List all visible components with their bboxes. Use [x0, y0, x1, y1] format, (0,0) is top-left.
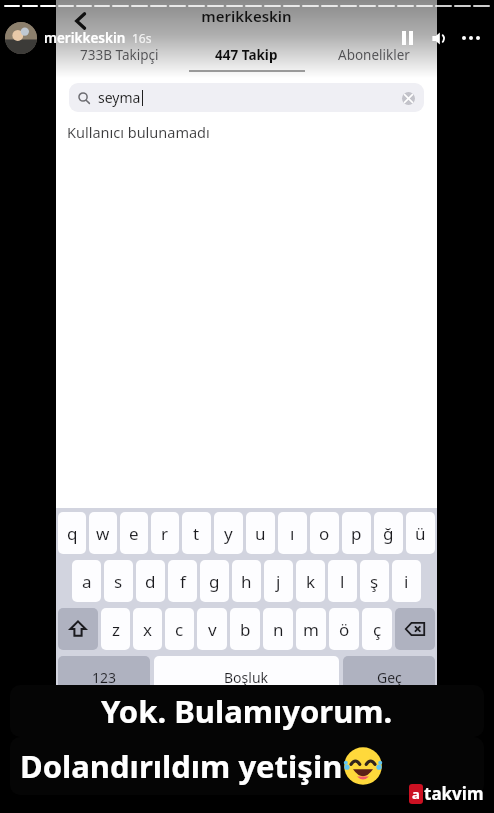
button[interactable]: seyma [69, 83, 424, 112]
button[interactable]: b [230, 608, 260, 650]
button[interactable]: ö [329, 608, 359, 650]
staticText: p [351, 522, 362, 545]
staticText: d [145, 570, 156, 593]
button[interactable]: Clear search [397, 87, 419, 109]
staticText: 447 Takip [215, 46, 278, 64]
staticText: v [208, 618, 217, 641]
button[interactable]: a [72, 560, 101, 602]
button[interactable]: u [246, 512, 275, 554]
staticText: ş [370, 570, 379, 593]
button[interactable]: ü [406, 512, 435, 554]
button[interactable]: j [264, 560, 293, 602]
button[interactable]: z [101, 608, 130, 650]
staticText: w [96, 522, 110, 545]
staticText: m [303, 618, 319, 641]
button[interactable]: y [214, 512, 243, 554]
staticText: a [412, 785, 420, 803]
button[interactable]: q [58, 512, 86, 554]
button[interactable]: r [151, 512, 179, 554]
staticText: b [240, 618, 251, 641]
staticText: Abonelikler [338, 46, 410, 64]
button[interactable]: More options [456, 23, 486, 53]
staticText: Dolandırıldım yetişin [20, 745, 343, 787]
staticText: l [340, 570, 345, 593]
button[interactable]: 733B Takipçi [56, 40, 183, 70]
button[interactable]: x [133, 608, 162, 650]
staticText: ç [373, 618, 382, 641]
staticText: ğ [383, 522, 394, 545]
button[interactable]: Geç [343, 656, 435, 698]
button[interactable]: v [197, 608, 227, 650]
button[interactable]: 447 Takip [183, 40, 310, 70]
staticText: 16s [132, 30, 152, 46]
staticText: q [67, 522, 78, 545]
button[interactable]: e [120, 512, 148, 554]
button[interactable]: ç [362, 608, 392, 650]
button[interactable]: Shift [58, 608, 98, 650]
staticText: s [114, 570, 123, 593]
staticText: n [273, 618, 284, 641]
staticText: takvim [424, 782, 484, 805]
staticText: o [319, 522, 330, 545]
button[interactable]: 123 [58, 656, 150, 698]
button[interactable]: t [182, 512, 211, 554]
button[interactable]: i [392, 560, 421, 602]
staticText: merikkeskin [44, 29, 126, 47]
staticText: Yok. Bulamıyorum. [101, 690, 393, 732]
button[interactable]: s [104, 560, 133, 602]
staticText: r [161, 522, 169, 545]
staticText: e [129, 522, 139, 545]
staticText: z [112, 618, 120, 641]
staticText: ö [339, 618, 350, 641]
staticText: u [255, 522, 266, 545]
staticText: f [180, 570, 186, 593]
staticText: Geç [377, 668, 402, 687]
button[interactable]: Sound [424, 23, 454, 53]
button[interactable]: f [168, 560, 197, 602]
staticText: Kullanıcı bulunamadı [67, 122, 210, 142]
button[interactable]: ş [360, 560, 389, 602]
button[interactable]: Boşluk [154, 656, 339, 698]
button[interactable]: o [310, 512, 339, 554]
button[interactable]: Backspace [395, 608, 435, 650]
button[interactable]: Profile photo [5, 22, 37, 54]
staticText: k [306, 570, 316, 593]
button[interactable]: g [200, 560, 229, 602]
staticText: x [143, 618, 152, 641]
staticText: ü [415, 522, 426, 545]
button[interactable]: Pause [392, 23, 422, 53]
button[interactable]: w [89, 512, 117, 554]
staticText: ı [290, 522, 295, 545]
button[interactable]: ı [278, 512, 307, 554]
button[interactable]: c [165, 608, 194, 650]
button[interactable]: ğ [374, 512, 403, 554]
button[interactable]: Abonelikler [310, 40, 437, 70]
staticText: g [209, 570, 220, 593]
staticText: i [404, 570, 409, 593]
staticText: Boşluk [224, 668, 269, 687]
button[interactable]: p [342, 512, 371, 554]
button[interactable]: m [296, 608, 326, 650]
button[interactable]: Back [64, 4, 98, 38]
staticText: 733B Takipçi [80, 46, 159, 64]
staticText: a [82, 570, 92, 593]
staticText: merikkeskin [56, 6, 437, 26]
staticText: j [276, 570, 281, 593]
staticText: 123 [92, 668, 117, 687]
button[interactable]: n [263, 608, 293, 650]
button[interactable]: h [232, 560, 261, 602]
staticText: h [241, 570, 252, 593]
button[interactable]: k [296, 560, 325, 602]
button[interactable]: l [328, 560, 357, 602]
staticText: y [224, 522, 233, 545]
staticText: t [193, 522, 200, 545]
staticText: seyma [98, 88, 141, 107]
staticText: c [175, 618, 184, 641]
button[interactable]: d [136, 560, 165, 602]
